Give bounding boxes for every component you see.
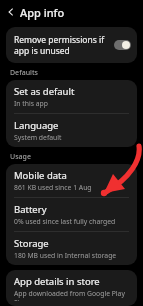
staticText: System default [14,133,62,142]
staticText: Defaults [10,68,38,78]
staticText: Usage [10,152,31,162]
staticText: Language [14,119,59,132]
button[interactable]: Mobile data [6,164,137,197]
staticText: Storage [14,237,49,250]
staticText: 0% used since last fully charged [14,217,116,226]
button[interactable]: Remove permissions if app is unused [6,27,137,63]
button[interactable]: Back [4,5,18,19]
button[interactable]: App details in store [6,270,137,306]
staticText: Mobile data [14,169,67,182]
staticText: App downloaded from Google Play Store [14,289,129,301]
button[interactable]: Battery [6,198,137,231]
staticText: 861 KB used since 1 Aug [14,183,92,192]
staticText: In this app [14,99,48,108]
staticText: Remove permissions if app is unused [14,34,110,56]
staticText: Battery [14,203,47,216]
staticText: App details in store [14,275,100,288]
button[interactable]: Storage [6,232,137,265]
button[interactable]: Language [6,114,137,147]
button[interactable]: Set as default [6,80,137,113]
staticText: Set as default [14,85,75,98]
staticText: 180 MB used in Internal storage [14,251,117,260]
staticText: App info [20,5,65,20]
